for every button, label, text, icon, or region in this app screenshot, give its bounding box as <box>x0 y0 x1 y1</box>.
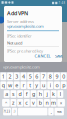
staticText: IPSec identifier <box>7 33 32 39</box>
button[interactable]: l <box>57 90 63 98</box>
staticText: d <box>19 90 22 98</box>
staticText: IPSec pre-shared key <box>7 48 43 54</box>
staticText: Not used <box>7 40 22 45</box>
staticText: 4 <box>22 73 25 80</box>
button[interactable]: o <box>54 81 60 89</box>
button[interactable]: x <box>57 99 65 107</box>
staticText: t <box>29 82 31 89</box>
button[interactable]: 0 <box>61 73 67 80</box>
staticText: q <box>2 82 5 89</box>
button[interactable]: s <box>10 90 16 98</box>
button[interactable]: 6 <box>34 73 40 80</box>
button[interactable]: 3 <box>14 73 20 80</box>
staticText: x <box>60 100 62 105</box>
staticText: 0 <box>62 73 65 80</box>
button[interactable]: CANCEL <box>34 53 50 59</box>
button[interactable]: :) <box>12 108 17 115</box>
staticText: ^ <box>5 100 7 105</box>
staticText: i <box>50 82 51 89</box>
button[interactable]: 1 <box>0 73 6 80</box>
button[interactable]: c <box>24 99 30 107</box>
staticText: j <box>46 90 47 98</box>
staticText: vpn.examplesite.com <box>7 24 44 29</box>
staticText: a <box>5 90 8 98</box>
button[interactable]: k <box>51 90 57 98</box>
button[interactable]: z <box>10 99 16 107</box>
staticText: 5 <box>29 73 32 80</box>
button[interactable]: t <box>27 81 33 89</box>
button[interactable]: u <box>41 81 47 89</box>
button[interactable]: 9 <box>54 73 60 80</box>
button[interactable]: . <box>48 108 54 115</box>
staticText: o <box>55 82 58 89</box>
staticText: 7:48 <box>58 1 65 5</box>
staticText: u <box>42 82 45 89</box>
button[interactable]: x <box>17 99 23 107</box>
staticText: SAVE <box>55 53 63 59</box>
button[interactable]: a <box>4 90 10 98</box>
button[interactable]: h <box>37 90 43 98</box>
staticText: s <box>12 90 15 98</box>
staticText: vpn.examplesite.com <box>3 64 40 70</box>
button[interactable]: b <box>37 99 43 107</box>
staticText: c <box>25 99 28 106</box>
button[interactable]: SAVE <box>55 53 63 59</box>
staticText: f <box>26 90 28 98</box>
staticText: 2 <box>9 73 12 80</box>
staticText: n <box>45 99 48 106</box>
button[interactable]: 2 <box>7 73 13 80</box>
staticText: Add VPN <box>7 10 28 17</box>
staticText: 8 <box>49 73 52 80</box>
button[interactable]: 7 <box>41 73 47 80</box>
staticText: y <box>35 82 38 89</box>
staticText: w <box>8 82 12 89</box>
button[interactable]: g <box>30 90 36 98</box>
button[interactable]: ^ <box>2 99 10 107</box>
button[interactable]: 4 <box>20 73 26 80</box>
staticText: v <box>32 99 35 106</box>
staticText: r <box>22 82 24 89</box>
button[interactable]: q <box>0 81 6 89</box>
button[interactable]: v <box>30 99 36 107</box>
staticText: 6 <box>35 73 38 80</box>
button[interactable]: 8 <box>47 73 53 80</box>
staticText: z <box>12 99 15 106</box>
staticText: e <box>15 82 18 89</box>
staticText: b <box>39 99 42 106</box>
staticText: 3 <box>15 73 18 80</box>
staticText: 7 <box>42 73 45 80</box>
button[interactable] <box>18 108 47 115</box>
button[interactable]: m <box>51 99 57 107</box>
staticText: . <box>50 108 51 115</box>
staticText: k <box>52 90 55 98</box>
button[interactable]: n <box>44 99 50 107</box>
button[interactable]: d <box>17 90 23 98</box>
staticText: 9 <box>55 73 58 80</box>
staticText: m <box>51 99 56 106</box>
button[interactable]: e <box>14 81 20 89</box>
staticText: g <box>32 90 35 98</box>
button[interactable]: r <box>20 81 26 89</box>
staticText: l <box>60 90 61 98</box>
staticText: CANCEL <box>34 53 50 59</box>
button[interactable]: j <box>44 90 50 98</box>
button[interactable]: 5 <box>27 73 33 80</box>
staticText: ?123 <box>4 110 11 113</box>
button[interactable]: i <box>47 81 53 89</box>
staticText: Next <box>57 110 62 113</box>
staticText: p <box>62 82 65 89</box>
button[interactable]: w <box>7 81 13 89</box>
button[interactable]: f <box>24 90 30 98</box>
button[interactable]: p <box>61 81 67 89</box>
button[interactable]: ?123 <box>3 108 11 115</box>
button[interactable]: y <box>34 81 40 89</box>
staticText: x <box>19 99 22 106</box>
button[interactable]: Next <box>54 108 64 115</box>
staticText: Server address <box>7 19 34 24</box>
staticText: :) <box>14 110 16 113</box>
staticText: 1 <box>2 73 5 80</box>
staticText: h <box>39 90 42 98</box>
